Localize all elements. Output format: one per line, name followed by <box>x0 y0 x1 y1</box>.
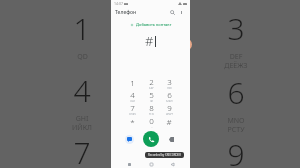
staticText: 3 <box>227 8 245 49</box>
button[interactable]: Поиск <box>168 8 177 17</box>
staticText: 4 <box>130 89 135 100</box>
staticText: DEF ДЕЁЖЗ <box>224 52 248 70</box>
staticText: JKL <box>150 100 154 102</box>
button[interactable]: Сообщение <box>125 135 134 144</box>
staticText: MNO <box>166 100 173 102</box>
button[interactable]: * <box>123 115 142 128</box>
staticText: WXYZ <box>166 113 173 115</box>
staticText: 0 <box>149 115 154 126</box>
button[interactable]: Добавить контакт <box>126 21 176 28</box>
staticText: GHI <box>130 100 135 102</box>
staticText: * <box>130 116 135 127</box>
staticText: 1 <box>130 77 135 88</box>
staticText: 6 <box>167 89 172 100</box>
button[interactable]: # <box>160 115 178 128</box>
staticText: TUV <box>149 113 154 115</box>
staticText: # <box>145 32 154 50</box>
staticText: PQRS <box>129 113 136 115</box>
staticText: Добавить контакт <box>136 22 172 27</box>
button[interactable]: 9 <box>160 102 178 115</box>
staticText: 9 <box>227 134 245 168</box>
button[interactable]: Назад <box>168 160 176 168</box>
staticText: QD <box>77 52 88 62</box>
staticText: 2 <box>149 76 154 87</box>
staticText: 4 <box>73 70 91 111</box>
button[interactable]: Ещё <box>177 8 186 17</box>
button[interactable]: 5 <box>142 89 160 102</box>
staticText: 5 <box>149 89 154 100</box>
button[interactable]: 4 <box>123 89 142 102</box>
staticText: 6 <box>227 72 245 113</box>
button[interactable]: Главный экран <box>147 160 155 168</box>
staticText: MNO РСТУ <box>227 116 245 134</box>
button[interactable]: Позвонить <box>143 131 159 147</box>
button[interactable]: 6 <box>160 89 178 102</box>
staticText: 8 <box>149 102 154 113</box>
button[interactable]: 8 <box>142 102 160 115</box>
staticText: Recorded by XRECORDER <box>148 153 181 157</box>
button[interactable]: 0 <box>142 115 160 128</box>
staticText: GHI ИЙКЛ <box>72 114 92 132</box>
staticText: 7 <box>130 102 135 113</box>
staticText: 14:07 <box>114 1 123 6</box>
staticText: Телефон <box>115 9 137 16</box>
button[interactable]: 1 <box>123 76 142 89</box>
button[interactable]: 3 <box>160 76 178 89</box>
staticText: DEF <box>167 87 172 89</box>
staticText: # <box>166 116 172 127</box>
staticText: 1 <box>73 8 91 49</box>
staticText: ABC <box>149 87 154 89</box>
staticText: + <box>151 126 153 128</box>
button[interactable]: 7 <box>123 102 142 115</box>
button[interactable]: Последние <box>125 160 133 168</box>
staticText: 7 <box>73 132 91 168</box>
staticText: 9 <box>167 102 172 113</box>
button[interactable]: Удалить <box>167 135 176 144</box>
staticText: 3 <box>167 76 172 87</box>
button[interactable]: 2 <box>142 76 160 89</box>
